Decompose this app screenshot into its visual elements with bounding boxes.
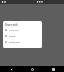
button[interactable]: Bluetooth <box>3 40 42 44</box>
button[interactable]: Recent apps <box>43 66 64 72</box>
staticText: Bluetooth <box>9 40 21 43</box>
staticText: Share with <box>5 23 18 26</box>
button[interactable]: Chrome <box>3 28 42 32</box>
staticText: Chrome <box>9 28 19 31</box>
button[interactable]: Back <box>0 66 22 72</box>
button[interactable]: Home <box>22 66 43 72</box>
staticText: Gmail <box>9 34 16 37</box>
button[interactable]: Gmail <box>3 34 42 38</box>
